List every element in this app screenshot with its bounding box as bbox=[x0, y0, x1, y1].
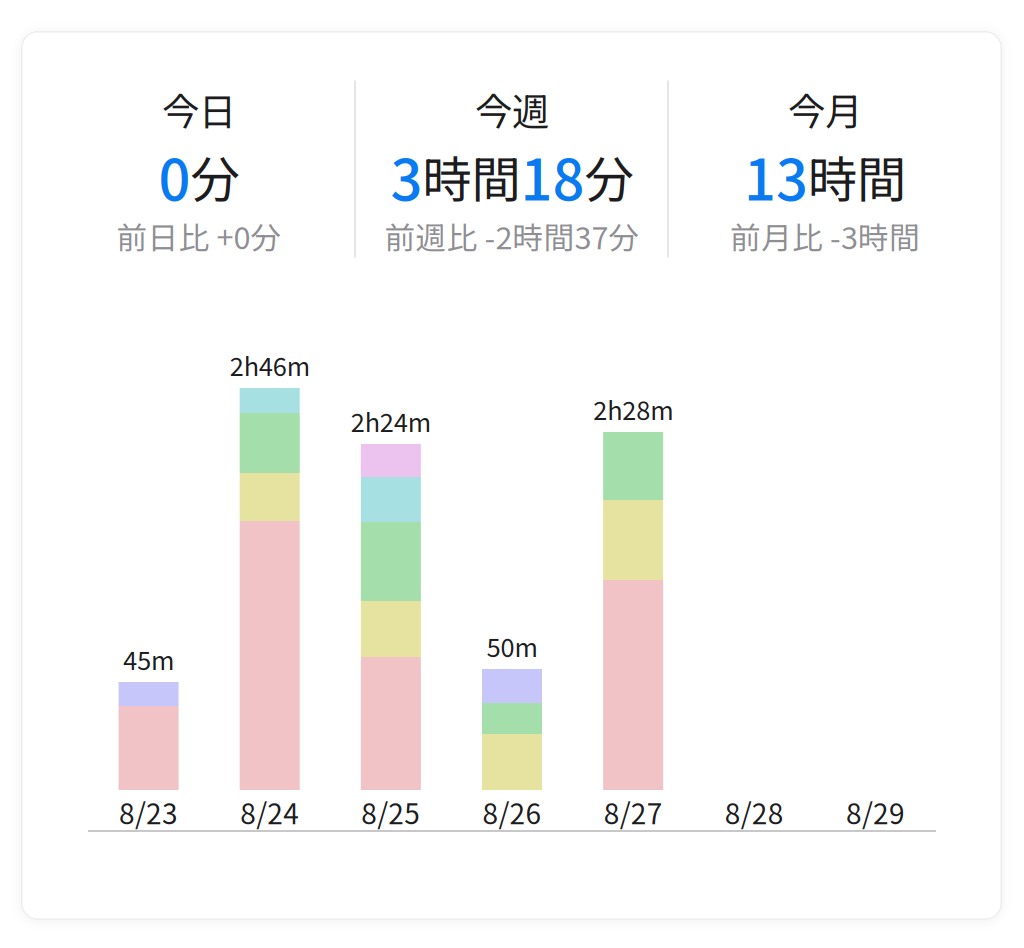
staticText: 8/23 bbox=[119, 792, 178, 832]
staticText: 8/29 bbox=[846, 792, 905, 832]
button[interactable]: 8/29 bbox=[815, 330, 936, 830]
staticText: 2h28m bbox=[593, 391, 673, 427]
staticText: 8/26 bbox=[482, 792, 541, 832]
staticText: 分 bbox=[584, 140, 633, 212]
staticText: 13 bbox=[744, 135, 808, 217]
button[interactable]: 8/24 2h46m bbox=[209, 330, 330, 830]
staticText: 18 bbox=[520, 135, 584, 217]
staticText: 前日比 +0分 bbox=[116, 214, 281, 258]
staticText: 今日 bbox=[162, 82, 236, 136]
staticText: 0 bbox=[158, 135, 190, 217]
staticText: 8/24 bbox=[240, 792, 299, 832]
staticText: 今週 bbox=[475, 82, 549, 136]
staticText: 2h24m bbox=[351, 403, 431, 439]
staticText: 前週比 -2時間37分 bbox=[384, 214, 639, 258]
staticText: 3 bbox=[390, 135, 422, 217]
button[interactable]: 今週 bbox=[362, 45, 662, 305]
staticText: 前月比 -3時間 bbox=[730, 214, 920, 258]
button[interactable]: 8/23 45m bbox=[88, 330, 209, 830]
staticText: 今月 bbox=[788, 82, 862, 136]
button[interactable]: 8/26 50m bbox=[451, 330, 572, 830]
staticText: 45m bbox=[123, 641, 174, 677]
button[interactable]: 8/28 bbox=[694, 330, 815, 830]
staticText: 時間 bbox=[422, 140, 520, 212]
staticText: 8/25 bbox=[361, 792, 420, 832]
button[interactable]: 今月 bbox=[665, 45, 985, 305]
button[interactable]: 8/25 2h24m bbox=[330, 330, 451, 830]
button[interactable]: 今日 bbox=[39, 45, 359, 305]
staticText: 時間 bbox=[808, 140, 906, 212]
staticText: 50m bbox=[486, 628, 537, 664]
staticText: 8/27 bbox=[604, 792, 663, 832]
button[interactable]: 8/27 2h28m bbox=[573, 330, 694, 830]
staticText: 2h46m bbox=[230, 347, 310, 383]
staticText: 8/28 bbox=[725, 792, 784, 832]
staticText: 分 bbox=[190, 140, 239, 212]
